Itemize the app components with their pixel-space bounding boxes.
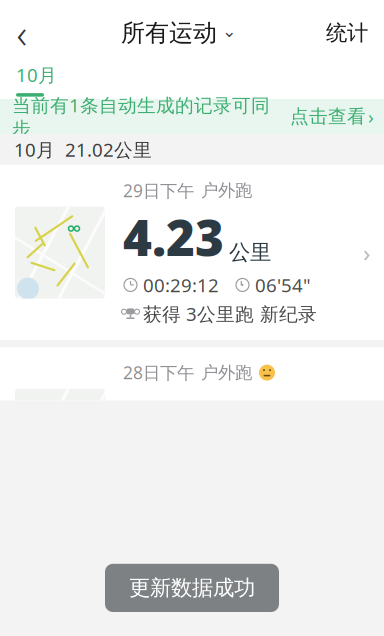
staticText: 当前有1条自动生成的记录可同步 [12,93,270,140]
button[interactable]: 当前有1条自动生成的记录可同步 [0,99,384,134]
staticText: ⌄ [222,21,237,41]
staticText: 4.11 [123,386,224,452]
staticText: 所有运动 [121,18,217,48]
button[interactable]: 27日晚上 [0,529,384,636]
staticText: ‹ [16,6,27,59]
staticText: 4.04 [123,568,224,634]
staticText: 29日下午 [123,179,194,202]
button[interactable]: 统计 [314,10,384,56]
staticText: 4.23 [123,204,224,269]
staticText: 06'54" [255,272,311,297]
staticText: 公里 [229,239,271,265]
staticText: › [368,104,374,129]
staticText: 10月 [16,62,57,87]
staticText: 统计 [326,20,368,46]
staticText: 28日下午 [123,361,194,384]
staticText: 更新数据成功 [129,575,255,601]
staticText: › [363,237,370,268]
staticText: 27日晚上 [123,543,194,566]
staticText: 公里 [229,603,271,630]
staticText: 户外跑 [201,180,252,201]
staticText: 获得 3公里跑 新纪录 [143,301,317,326]
staticText: 10月 21.02公里 [14,137,152,162]
staticText: 户外跑 [201,544,252,565]
button[interactable]: 10月 [0,62,67,97]
button[interactable]: 所有运动 [115,10,243,56]
staticText: 户外跑 [201,362,252,383]
staticText: 点击查看 [290,105,366,128]
button[interactable]: 返回 [0,11,44,55]
staticText: 00:29:12 [143,272,219,297]
button[interactable]: 28日下午 [0,347,384,522]
button[interactable]: 29日下午 [0,165,384,340]
